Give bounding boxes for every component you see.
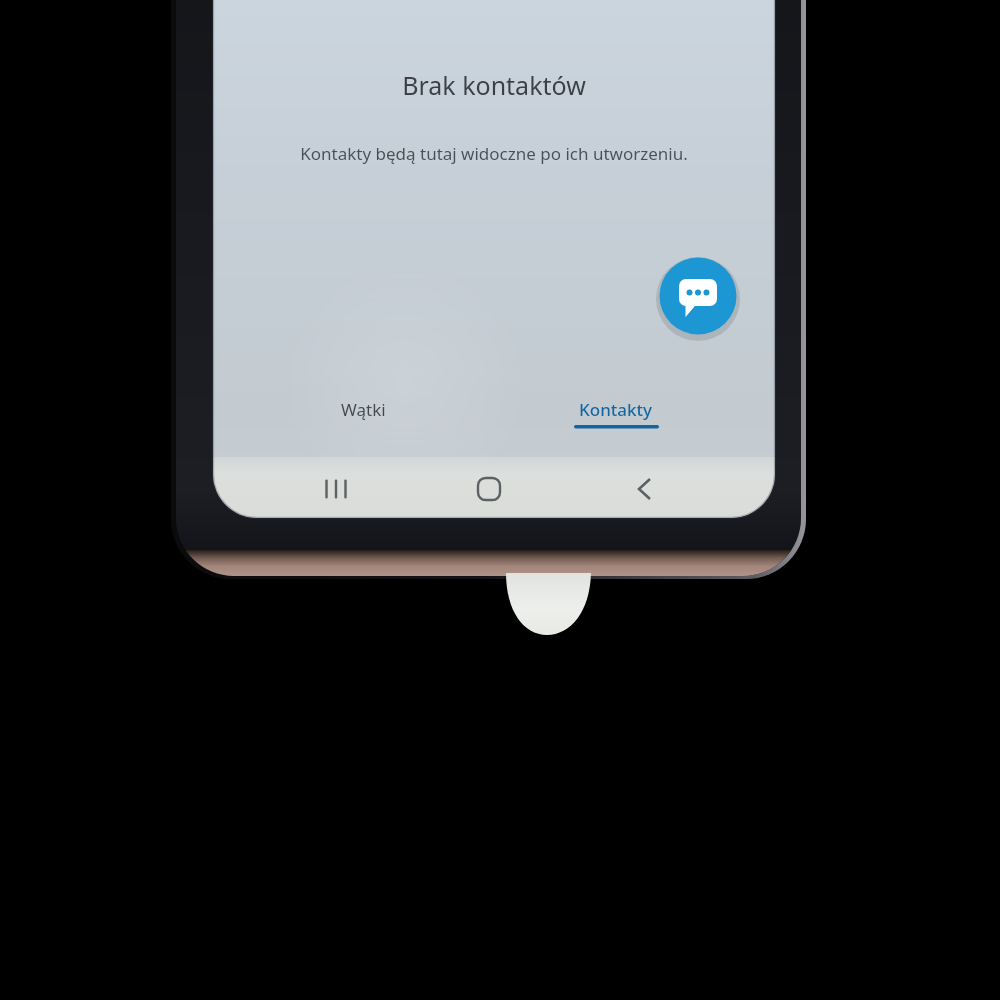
button[interactable]: Ekran główny: [455, 462, 523, 518]
button[interactable]: Ostatnie aplikacje: [302, 462, 370, 518]
staticText: Kontakty: [579, 398, 653, 421]
staticText: Kontakty będą tutaj widoczne po ich utwo…: [300, 142, 688, 165]
button[interactable]: Wstecz: [611, 462, 679, 518]
button[interactable]: Wątki: [289, 386, 437, 432]
button[interactable]: Nowa wiadomość: [660, 258, 737, 335]
staticText: Wątki: [341, 398, 386, 421]
button[interactable]: Kontakty: [542, 386, 690, 432]
staticText: Brak kontaktów: [402, 68, 586, 102]
